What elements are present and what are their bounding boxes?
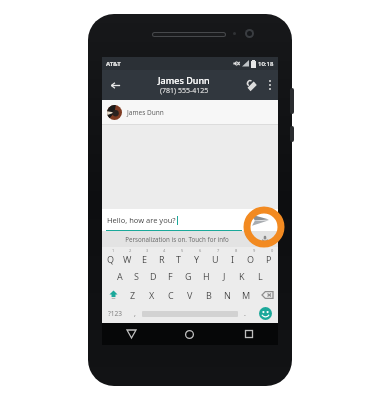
staticText: 1: [112, 248, 115, 253]
button[interactable]: 6: [188, 247, 206, 266]
staticText: A: [117, 270, 123, 282]
staticText: S: [134, 270, 139, 282]
staticText: ,: [134, 309, 136, 319]
staticText: T: [176, 253, 182, 265]
staticText: G: [185, 270, 192, 282]
staticText: L: [258, 270, 263, 282]
button[interactable]: X: [142, 285, 161, 304]
staticText: James Dunn: [127, 108, 164, 117]
staticText: Hello, how are you?: [107, 215, 176, 225]
button[interactable]: 0: [260, 247, 278, 266]
staticText: E: [142, 253, 148, 265]
button[interactable]: ,: [128, 304, 142, 323]
staticText: 10:18: [258, 60, 274, 68]
staticText: V: [187, 289, 193, 301]
staticText: Q: [107, 253, 115, 265]
other: Voice input highlight: [243, 206, 285, 248]
button[interactable]: 2: [119, 247, 136, 266]
staticText: D: [150, 270, 157, 282]
button[interactable]: Attach: [240, 70, 262, 100]
button[interactable]: 8: [224, 247, 242, 266]
button[interactable]: Backspace: [256, 285, 278, 304]
staticText: N: [224, 289, 231, 301]
staticText: 3: [146, 248, 149, 253]
button[interactable]: B: [199, 285, 218, 304]
button[interactable]: C: [161, 285, 180, 304]
button[interactable]: A: [111, 266, 128, 285]
button[interactable]: V: [180, 285, 199, 304]
button[interactable]: G: [179, 266, 197, 285]
button[interactable]: Z: [124, 285, 142, 304]
staticText: C: [168, 289, 174, 301]
staticText: O: [247, 253, 255, 265]
button[interactable]: D: [145, 266, 162, 285]
staticText: Z: [130, 289, 136, 301]
staticText: P: [266, 253, 272, 265]
button[interactable]: K: [233, 266, 251, 285]
button[interactable]: N: [218, 285, 237, 304]
staticText: Personalization is on. Touch for info: [125, 235, 229, 243]
button[interactable]: H: [197, 266, 215, 285]
button[interactable]: .: [238, 304, 252, 323]
staticText: I: [231, 253, 235, 265]
button[interactable]: James Dunn: [128, 74, 240, 96]
staticText: 8: [235, 248, 238, 253]
button[interactable]: Send: [242, 209, 278, 231]
staticText: 9: [253, 248, 256, 253]
staticText: (781) 555-4125: [160, 86, 209, 96]
button[interactable]: Home: [160, 323, 219, 345]
staticText: F: [168, 270, 173, 282]
staticText: .: [244, 309, 246, 319]
button[interactable]: J: [215, 266, 233, 285]
button[interactable]: 7: [206, 247, 224, 266]
staticText: R: [159, 253, 165, 265]
button[interactable]: 9: [242, 247, 260, 266]
button[interactable]: Emoji: [252, 304, 278, 323]
button[interactable]: Recent apps: [219, 323, 278, 345]
staticText: K: [239, 270, 245, 282]
button[interactable]: F: [162, 266, 179, 285]
staticText: James Dunn: [158, 74, 210, 86]
staticText: 0: [271, 248, 274, 253]
button[interactable]: 5: [170, 247, 188, 266]
button[interactable]: ?123: [102, 304, 128, 323]
button[interactable]: L: [251, 266, 269, 285]
staticText: B: [206, 289, 212, 301]
staticText: M: [242, 289, 251, 301]
staticText: 2: [129, 248, 132, 253]
button[interactable]: Space: [142, 309, 238, 318]
staticText: W: [123, 253, 132, 265]
staticText: 4: [163, 248, 166, 253]
staticText: H: [203, 270, 210, 282]
button[interactable]: 1: [102, 247, 119, 266]
staticText: 7: [217, 248, 220, 253]
button[interactable]: Shift: [102, 285, 124, 304]
staticText: Y: [194, 253, 200, 265]
button[interactable]: 3: [136, 247, 153, 266]
button[interactable]: M: [237, 285, 256, 304]
staticText: X: [149, 289, 155, 301]
staticText: 5: [181, 248, 184, 253]
button[interactable]: Voice input: [252, 231, 278, 247]
button[interactable]: Back: [102, 323, 160, 345]
button[interactable]: 4: [153, 247, 170, 266]
staticText: U: [212, 253, 219, 265]
button[interactable]: S: [128, 266, 145, 285]
button[interactable]: More options: [262, 70, 278, 100]
button[interactable]: Back: [102, 70, 128, 100]
staticText: AT&T: [106, 60, 121, 68]
button[interactable]: James Dunn: [102, 100, 278, 124]
staticText: ?123: [108, 309, 122, 318]
staticText: 6: [199, 248, 202, 253]
staticText: J: [223, 270, 226, 282]
